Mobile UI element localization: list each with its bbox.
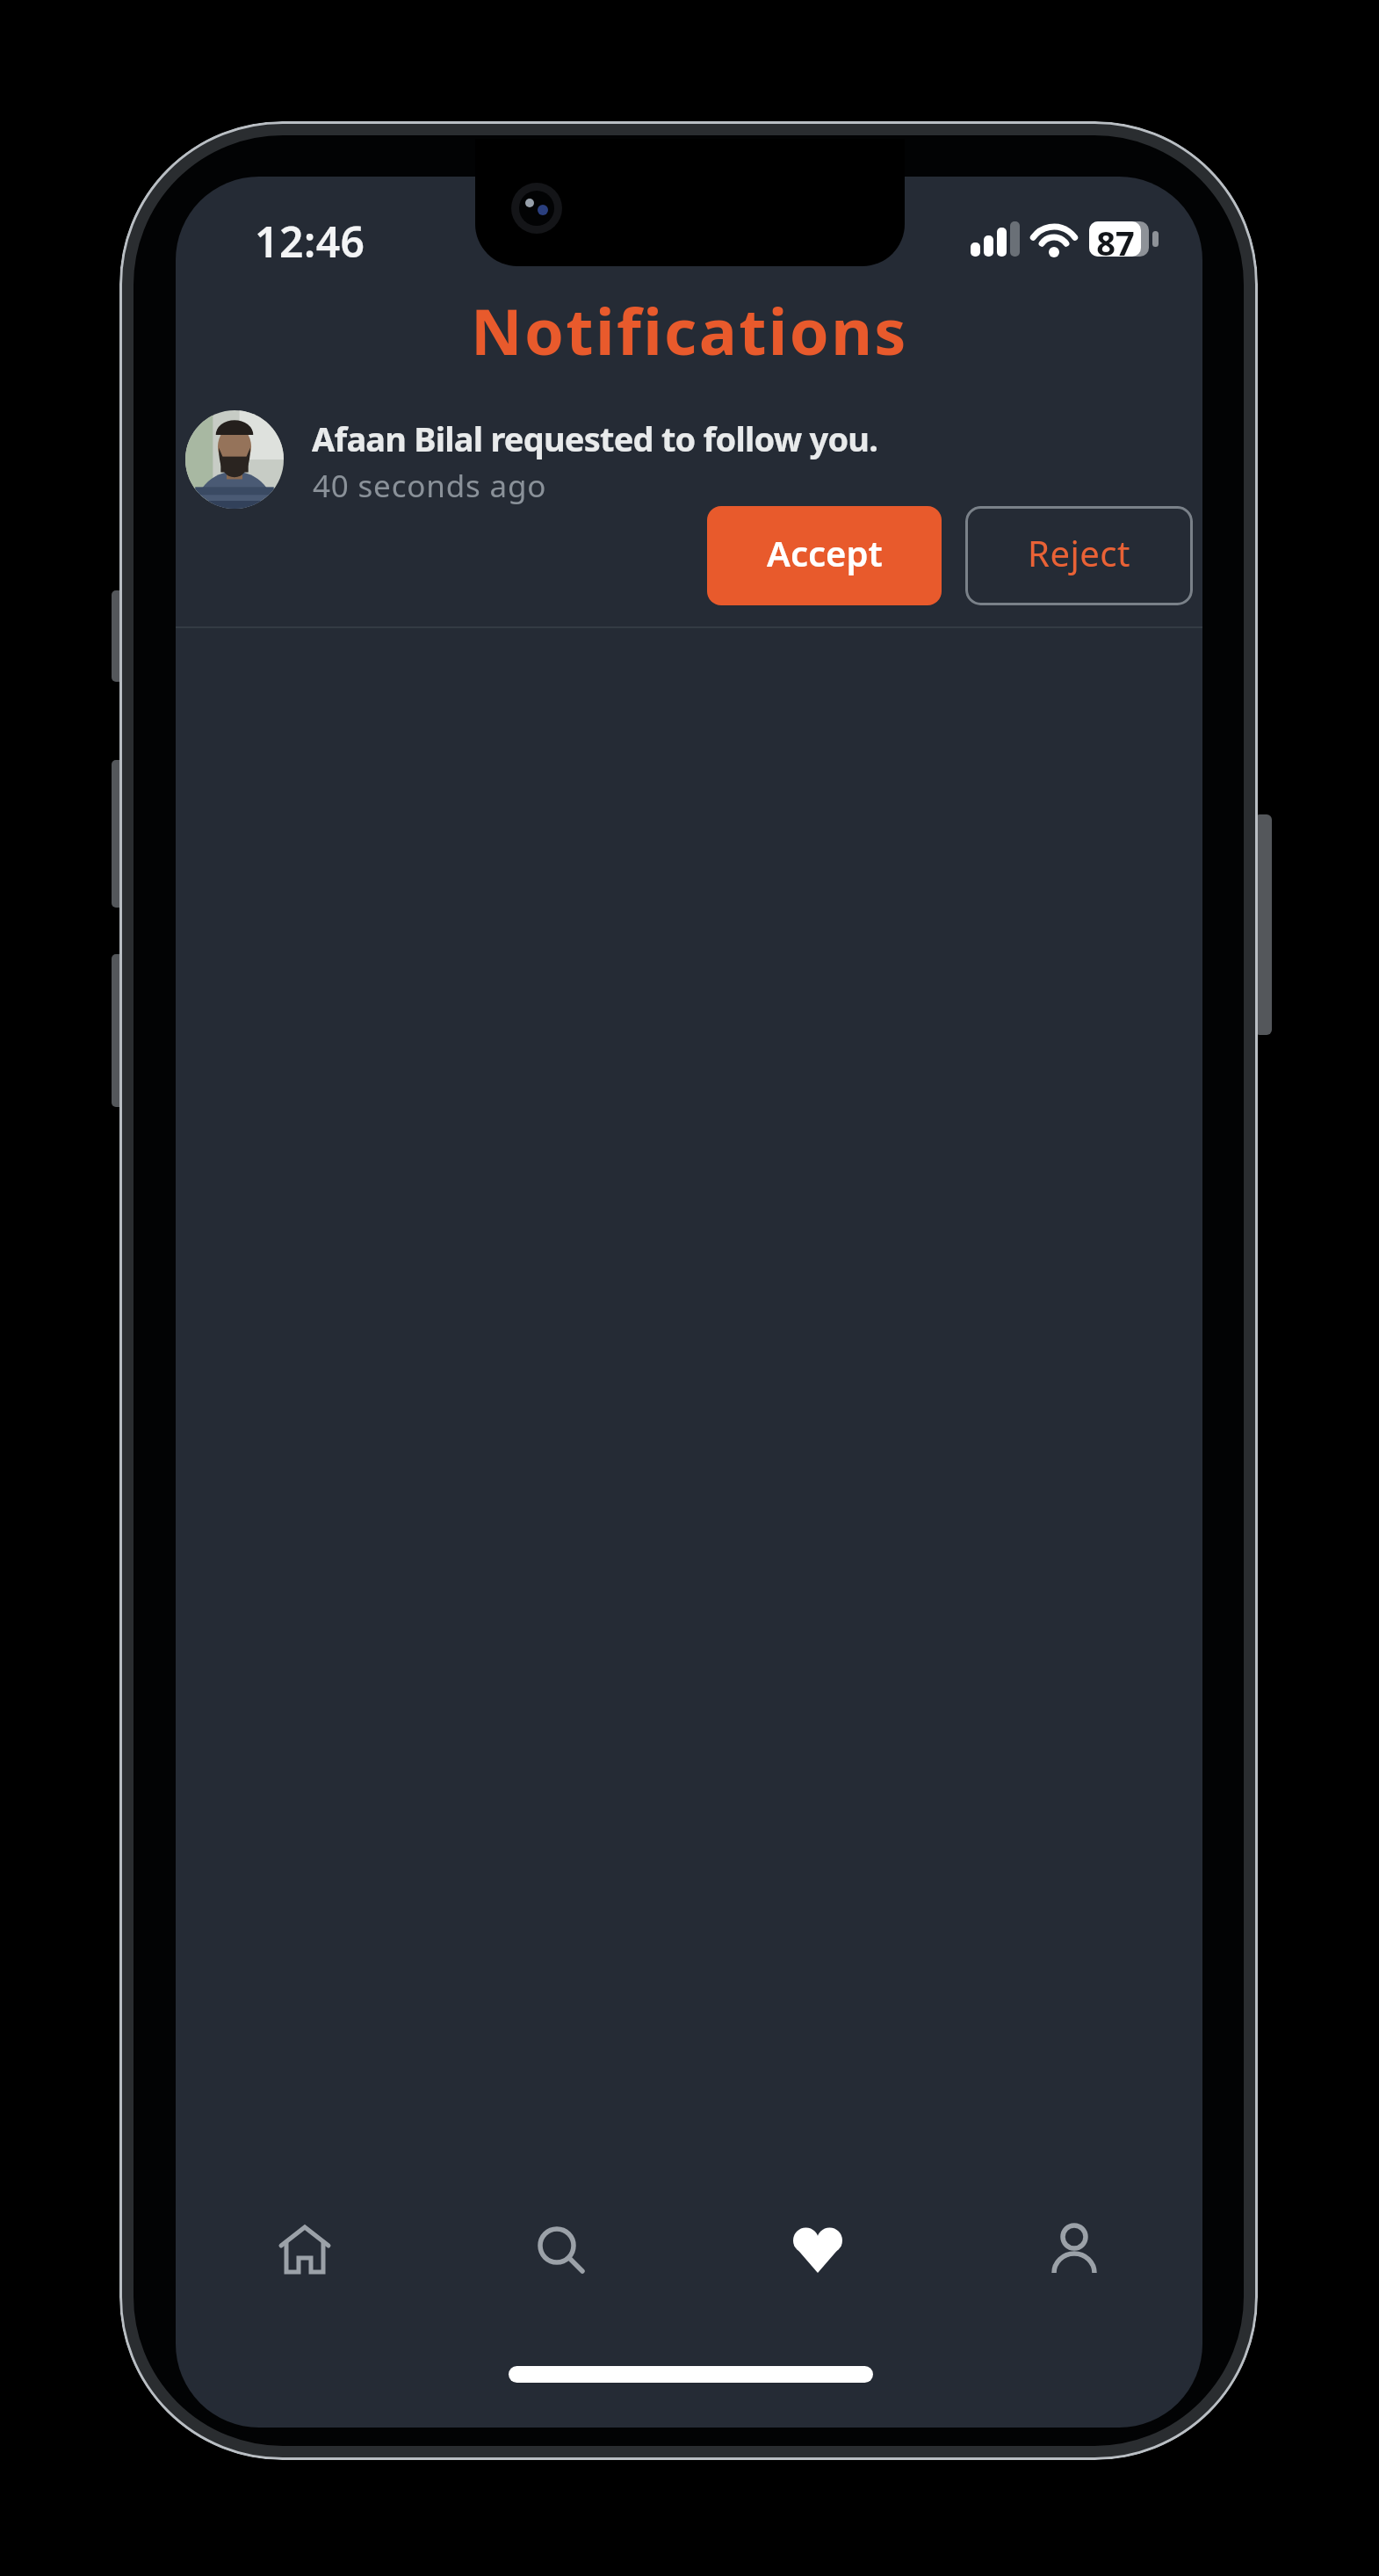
staticText: Accept bbox=[767, 529, 883, 576]
button[interactable] bbox=[946, 2197, 1202, 2303]
button[interactable] bbox=[176, 2197, 433, 2303]
button[interactable]: Reject bbox=[965, 506, 1193, 605]
staticText: 87 bbox=[1089, 220, 1142, 265]
staticText: 40 seconds ago bbox=[313, 465, 547, 507]
button[interactable] bbox=[433, 2197, 689, 2303]
button[interactable]: Accept bbox=[707, 506, 942, 605]
staticText: Reject bbox=[1028, 529, 1130, 576]
staticText: Notifications bbox=[471, 287, 908, 373]
button[interactable]: Afaan Bilal requested to follow you. bbox=[176, 405, 1202, 626]
staticText: Afaan Bilal requested to follow you. bbox=[312, 416, 878, 461]
staticText: 12:46 bbox=[255, 213, 365, 270]
button[interactable] bbox=[689, 2197, 946, 2303]
